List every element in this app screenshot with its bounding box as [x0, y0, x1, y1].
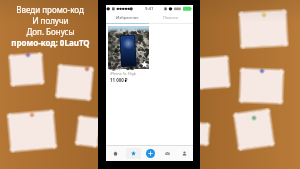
staticText: 9:41: [145, 6, 154, 12]
button[interactable]: Home: [106, 146, 124, 161]
staticText: Доп. Бонусы: [26, 26, 75, 37]
button[interactable]: Поиски: [149, 12, 193, 23]
staticText: И получи: [32, 15, 69, 26]
staticText: Введи промо-код: [16, 4, 84, 15]
button[interactable]: Favorites: [124, 146, 142, 161]
staticText: Избранное: [116, 15, 139, 21]
button[interactable]: Add listing: [142, 146, 159, 161]
staticText: iPhone 5s 16gb: [110, 71, 136, 76]
button[interactable]: Messages: [159, 146, 176, 161]
button[interactable]: Profile: [176, 146, 193, 161]
button[interactable]: Избранное: [106, 12, 149, 23]
button[interactable]: iPhone 5s 16gb: [108, 26, 149, 83]
staticText: 11 000 ₽: [110, 77, 128, 83]
staticText: Поиски: [163, 15, 179, 21]
staticText: промо-код: 0LauTQ: [11, 37, 90, 48]
